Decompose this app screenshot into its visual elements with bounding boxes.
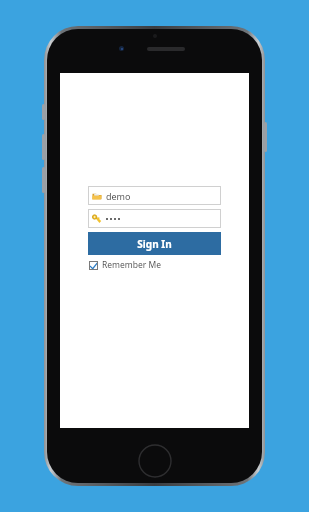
button[interactable]: Sign In	[88, 232, 221, 255]
button[interactable]: Remember Me	[88, 258, 166, 272]
other: Power	[264, 122, 267, 152]
staticText: demo	[106, 190, 131, 202]
other: Volume down	[42, 167, 45, 193]
button[interactable]	[88, 209, 221, 228]
button[interactable]: demo	[88, 186, 221, 205]
other: Volume up	[42, 134, 45, 160]
button[interactable]: Home	[138, 444, 172, 478]
staticText: Sign In	[137, 237, 172, 251]
other: Mute switch	[42, 104, 45, 120]
staticText: Remember Me	[102, 259, 162, 271]
